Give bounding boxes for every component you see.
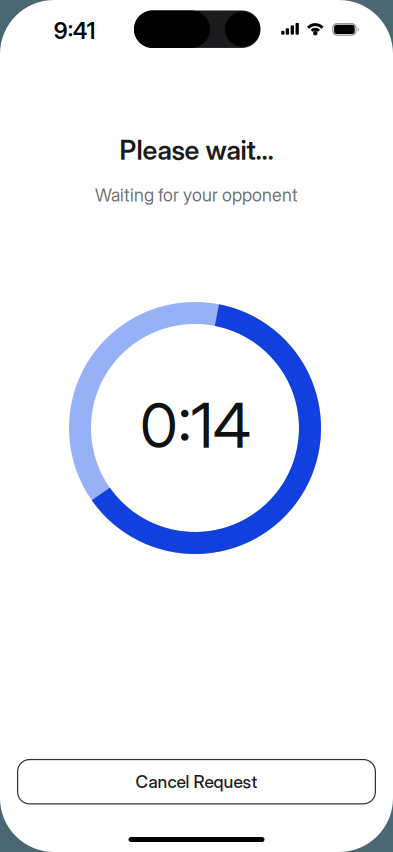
button[interactable]: Cancel Request <box>17 759 376 804</box>
staticText: Cancel Request <box>135 771 257 792</box>
staticText: 9:41 <box>54 17 96 44</box>
staticText: 0:14 <box>140 388 251 463</box>
staticText: Please wait... <box>119 134 273 166</box>
staticText: Waiting for your opponent <box>95 184 298 206</box>
